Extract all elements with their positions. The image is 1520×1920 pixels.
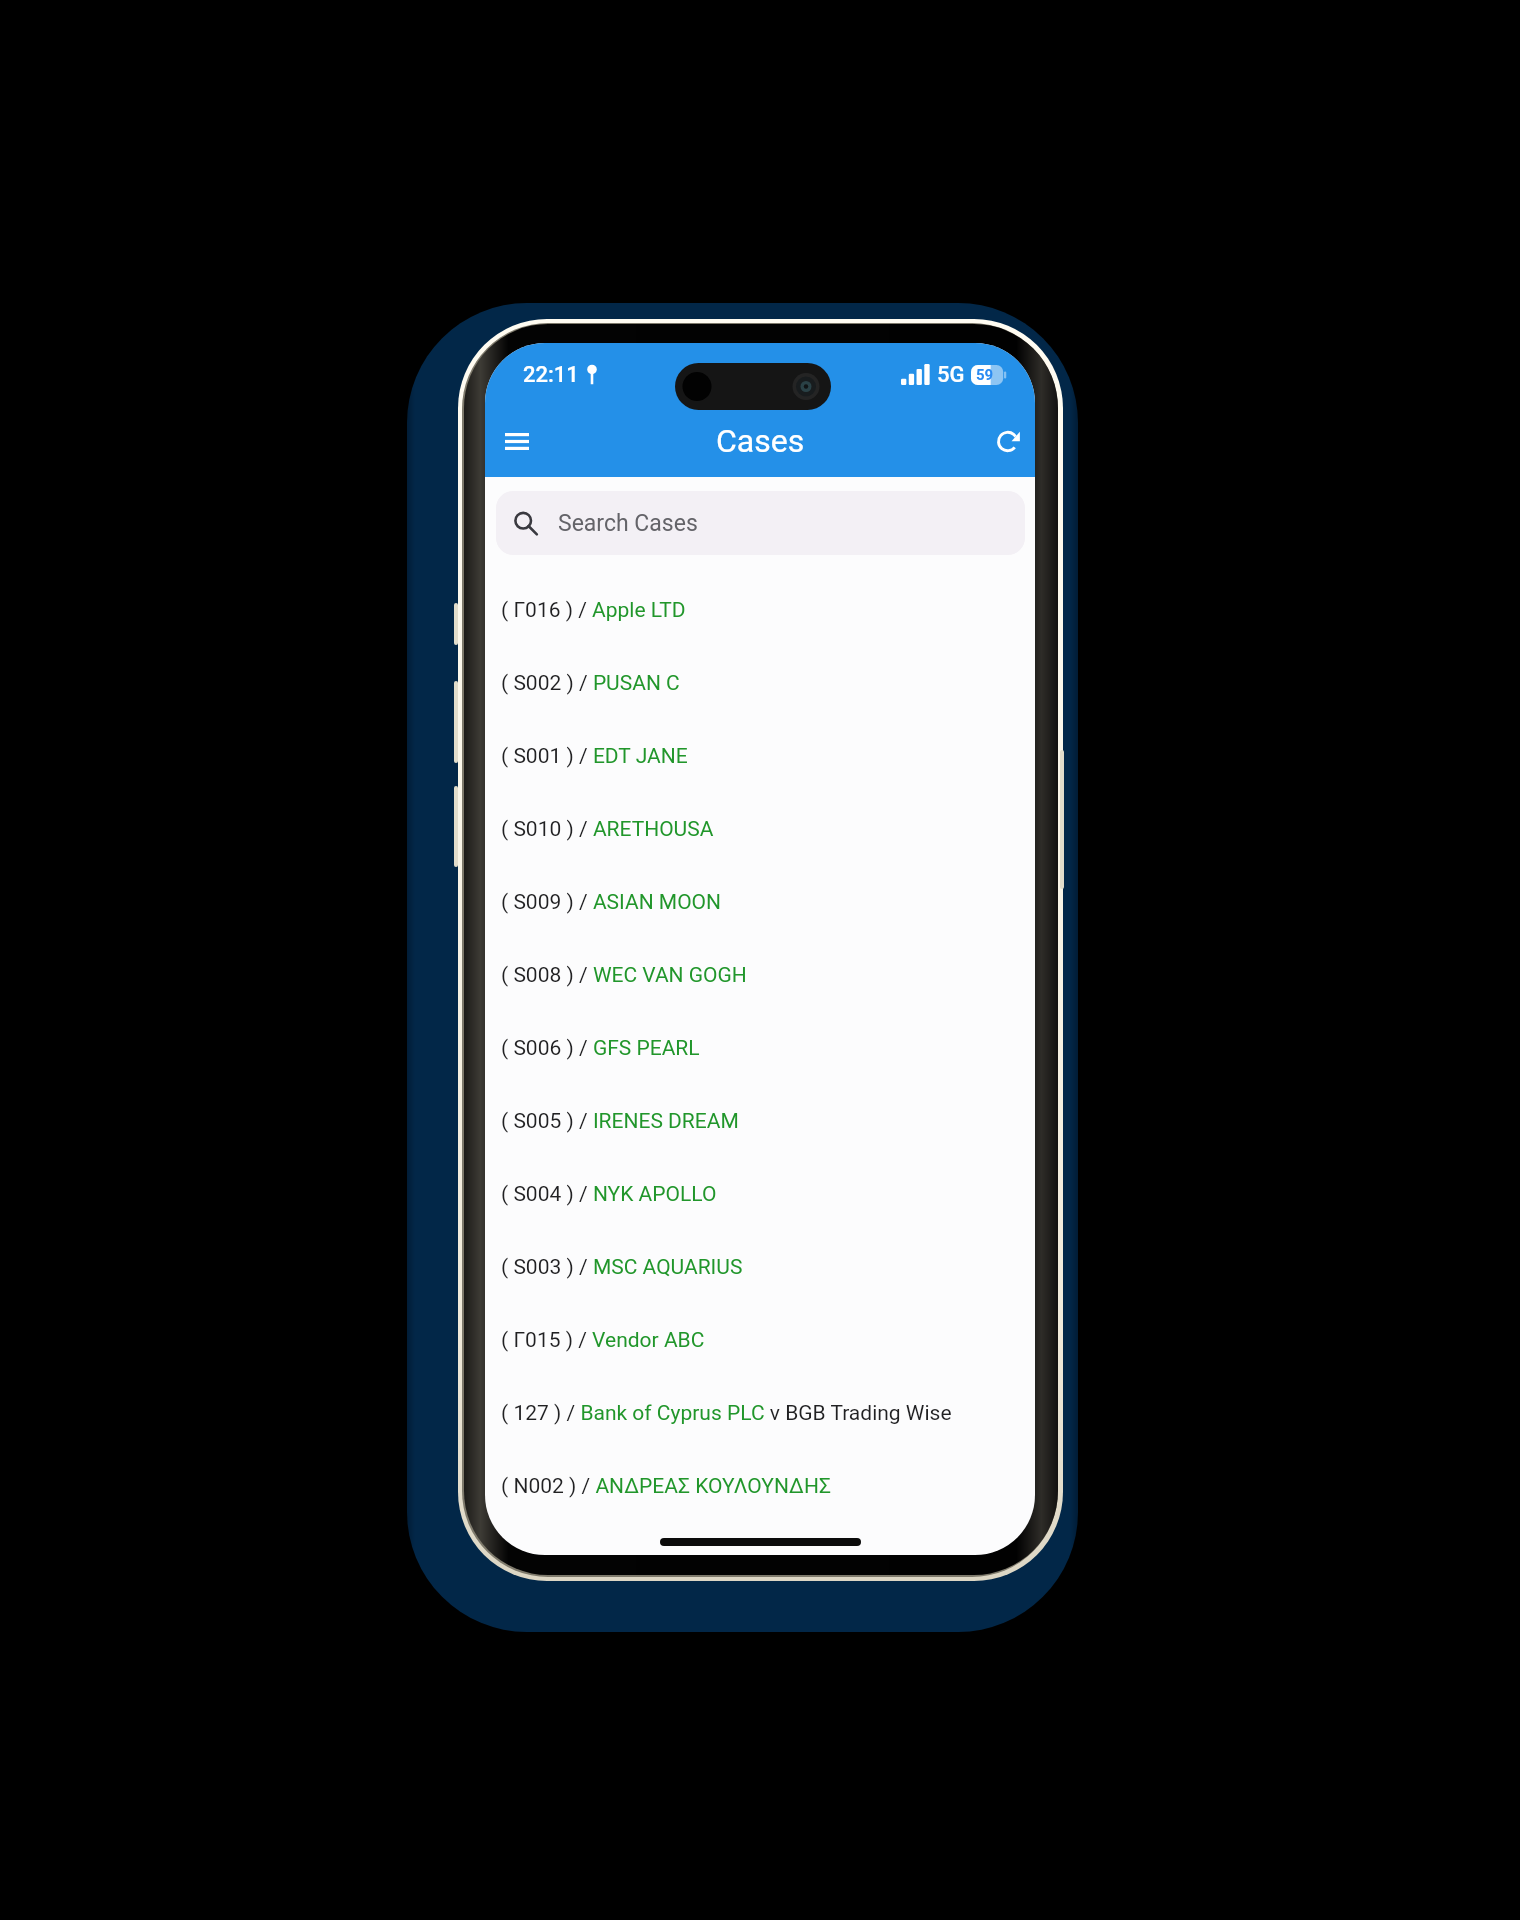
- button[interactable]: ( Γ015 ) / Vendor ABC: [485, 1304, 1035, 1377]
- staticText: ( Γ015 ) / Vendor ABC: [501, 1328, 705, 1353]
- button[interactable]: ( S009 ) / ASIAN MOON: [485, 866, 1035, 939]
- staticText: ( S005 ) / IRENES DREAM: [501, 1109, 739, 1134]
- button[interactable]: ( S004 ) / NYK APOLLO: [485, 1158, 1035, 1231]
- staticText: ( Γ016 ) / Apple LTD: [501, 598, 686, 623]
- staticText: 5G: [937, 362, 965, 388]
- button[interactable]: ( S001 ) / EDT JANE: [485, 720, 1035, 793]
- staticText: ( S008 ) / WEC VAN GOGH: [501, 963, 747, 988]
- button[interactable]: Refresh: [985, 413, 1035, 469]
- button[interactable]: ( S006 ) / GFS PEARL: [485, 1012, 1035, 1085]
- staticText: ( S010 ) / ARETHOUSA: [501, 817, 714, 842]
- button[interactable]: ( N002 ) / ΑΝΔΡΕΑΣ ΚΟΥΛΟΥΝΔΗΣ: [485, 1450, 1035, 1523]
- button[interactable]: ( S008 ) / WEC VAN GOGH: [485, 939, 1035, 1012]
- button[interactable]: Menu: [487, 413, 547, 469]
- button[interactable]: ( S010 ) / ARETHOUSA: [485, 793, 1035, 866]
- staticText: 22:11: [523, 362, 579, 388]
- button[interactable]: ( S003 ) / MSC AQUARIUS: [485, 1231, 1035, 1304]
- staticText: ( S006 ) / GFS PEARL: [501, 1036, 700, 1061]
- button[interactable]: ( 127 ) / Bank of Cyprus PLC v BGB Tradi…: [485, 1377, 1035, 1450]
- staticText: ( 127 ) / Bank of Cyprus PLC v BGB Tradi…: [501, 1401, 952, 1426]
- staticText: ( S002 ) / PUSAN C: [501, 671, 680, 696]
- staticText: ( S003 ) / MSC AQUARIUS: [501, 1255, 743, 1280]
- button[interactable]: ( S005 ) / IRENES DREAM: [485, 1085, 1035, 1158]
- staticText: ( N002 ) / ΑΝΔΡΕΑΣ ΚΟΥΛΟΥΝΔΗΣ: [501, 1474, 831, 1499]
- staticText: ( S004 ) / NYK APOLLO: [501, 1182, 717, 1207]
- button[interactable]: Search Cases: [496, 491, 1025, 555]
- button[interactable]: ( Γ016 ) / Apple LTD: [485, 574, 1035, 647]
- staticText: Cases: [716, 422, 805, 460]
- button[interactable]: ( S002 ) / PUSAN C: [485, 647, 1035, 720]
- staticText: ( S001 ) / EDT JANE: [501, 744, 688, 769]
- staticText: Search Cases: [558, 510, 698, 537]
- staticText: 59: [976, 366, 994, 384]
- staticText: ( S009 ) / ASIAN MOON: [501, 890, 722, 915]
